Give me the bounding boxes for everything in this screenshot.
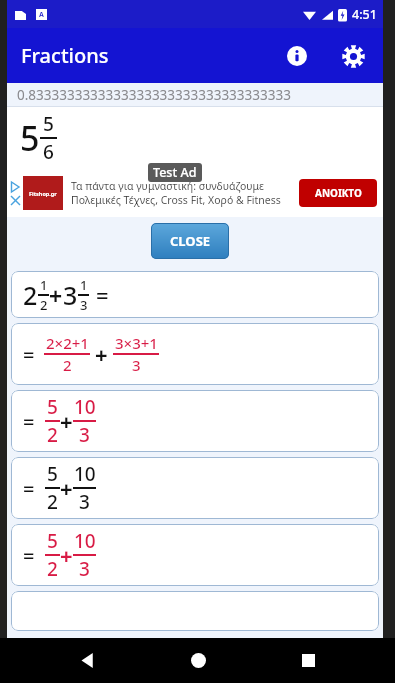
staticText: Fractions — [21, 42, 109, 69]
button[interactable]: = — [11, 457, 379, 519]
button[interactable]: = — [11, 390, 379, 452]
button[interactable]: Home — [174, 638, 222, 683]
staticText: + — [60, 406, 73, 436]
staticText: 5 — [47, 394, 58, 420]
staticText: = — [23, 341, 35, 368]
staticText: 3×3+1 — [115, 333, 158, 353]
staticText: = — [23, 542, 35, 569]
staticText: A — [39, 10, 44, 20]
staticText: Test Ad — [153, 164, 197, 181]
staticText: CLOSE — [170, 232, 211, 250]
staticText: 6 — [43, 139, 54, 165]
button[interactable]: 2 — [11, 271, 379, 318]
staticText: = — [23, 408, 35, 435]
staticText: 2 — [47, 422, 58, 448]
staticText: 1 — [80, 276, 88, 294]
staticText: = — [23, 475, 35, 502]
staticText: 3 — [63, 278, 78, 312]
staticText: 2 — [23, 278, 38, 312]
button[interactable]: Info — [277, 36, 317, 76]
staticText: 5 — [20, 115, 40, 161]
staticText: 3 — [79, 422, 90, 448]
staticText: 5 — [47, 461, 58, 487]
staticText: 2 — [47, 489, 58, 515]
staticText: 3 — [80, 296, 88, 314]
staticText: + — [60, 540, 73, 570]
staticText: 4:51 — [352, 6, 377, 23]
staticText: 2 — [47, 556, 58, 582]
staticText: Τα πάντα για γυμναστική: συνδυάζουμε — [71, 179, 264, 193]
button[interactable]: CLOSE — [151, 223, 229, 259]
staticText: 5 — [43, 111, 54, 137]
staticText: 10 — [74, 528, 96, 554]
staticText: 10 — [74, 461, 96, 487]
staticText: 10 — [74, 394, 96, 420]
staticText: = — [96, 280, 109, 310]
staticText: + — [49, 280, 63, 311]
button[interactable]: = — [11, 323, 379, 385]
staticText: 2 — [40, 296, 48, 314]
staticText: 5 — [47, 528, 58, 554]
staticText: + — [95, 339, 108, 369]
staticText: Πολεμικές Τέχνες, Cross Fit, Χορό & Fitn… — [71, 193, 281, 207]
button[interactable]: = — [11, 524, 379, 586]
staticText: 3 — [132, 355, 141, 375]
staticText: 2 — [63, 355, 72, 375]
button[interactable] — [11, 591, 379, 631]
button[interactable]: Recents — [284, 638, 332, 683]
button[interactable]: Settings — [333, 36, 373, 76]
staticText: 2×2+1 — [46, 333, 89, 353]
staticText: 3 — [79, 489, 90, 515]
staticText: 0.8333333333333333333333333333333333 — [17, 86, 291, 104]
staticText: 1 — [40, 276, 48, 294]
button[interactable]: ΑΝΟΙΚΤΟ — [299, 179, 377, 207]
button[interactable]: Back — [63, 638, 111, 683]
staticText: + — [60, 473, 73, 503]
staticText: 3 — [79, 556, 90, 582]
staticText: Fitshop.gr — [29, 190, 57, 197]
button[interactable]: Fitshop.gr — [7, 169, 383, 217]
staticText: ΑΝΟΙΚΤΟ — [315, 186, 362, 200]
